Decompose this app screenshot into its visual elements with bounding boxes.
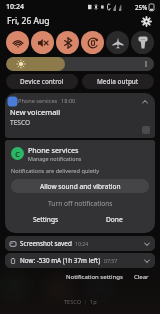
button[interactable]: Sound off <box>31 31 54 54</box>
button[interactable]: Now: -530 mA (1h 37m left) <box>5 253 155 268</box>
staticText: Turn off notifications <box>48 199 113 208</box>
button[interactable]: Flashlight <box>131 31 154 54</box>
staticText: Phone services <box>18 97 58 105</box>
button[interactable]: Airplane mode <box>106 31 129 54</box>
button[interactable]: Allow sound and vibration <box>11 179 149 193</box>
button[interactable]: Done <box>80 213 149 226</box>
button[interactable]: Screenshot saved <box>5 236 155 251</box>
button[interactable]: Device control <box>6 74 78 89</box>
staticText: Notification settings <box>66 273 123 281</box>
button[interactable]: Media output <box>82 74 154 89</box>
staticText: Manage notifications <box>28 155 82 162</box>
staticText: 18:00 <box>61 97 76 105</box>
button[interactable]: Collapse <box>140 97 150 107</box>
button[interactable]: Bluetooth <box>56 31 79 54</box>
button[interactable]: Settings <box>139 14 153 28</box>
button[interactable]: Wi-Fi <box>6 31 29 54</box>
staticText: Done <box>106 215 123 224</box>
button[interactable]: Settings <box>11 213 80 226</box>
staticText: TESCO <box>10 118 31 127</box>
button[interactable]: Notification settings <box>63 271 126 283</box>
staticText: New voicemail <box>10 107 61 117</box>
staticText: Clear <box>134 273 149 281</box>
button[interactable]: Auto rotate <box>81 31 104 54</box>
staticText: Phone services <box>28 145 79 155</box>
button[interactable]: Turn off notifications <box>11 197 149 210</box>
staticText: Device control <box>20 77 64 86</box>
staticText: Fri, 26 Aug <box>7 15 50 27</box>
staticText: Allow sound and vibration <box>40 182 121 191</box>
staticText: 10:24 <box>75 240 89 247</box>
staticText: 25% <box>135 3 148 11</box>
staticText: Media output <box>97 77 139 86</box>
button[interactable]: Phone services <box>5 93 155 138</box>
staticText: | <box>84 298 88 306</box>
staticText: Now: -530 mA (1h 37m left) <box>20 256 101 265</box>
staticText: Notifications are delivered quietly <box>11 167 100 175</box>
button[interactable]: Clear <box>131 271 152 283</box>
staticText: TESCO <box>64 298 82 306</box>
button[interactable]: Brightness <box>6 57 154 71</box>
staticText: 1p <box>90 298 97 306</box>
staticText: 10:24 <box>6 2 24 12</box>
staticText: Settings <box>33 215 59 224</box>
staticText: 07:57 <box>104 257 118 264</box>
button[interactable]: Action <box>142 126 150 134</box>
staticText: Screenshot saved <box>20 239 72 248</box>
staticText: C <box>15 149 20 159</box>
